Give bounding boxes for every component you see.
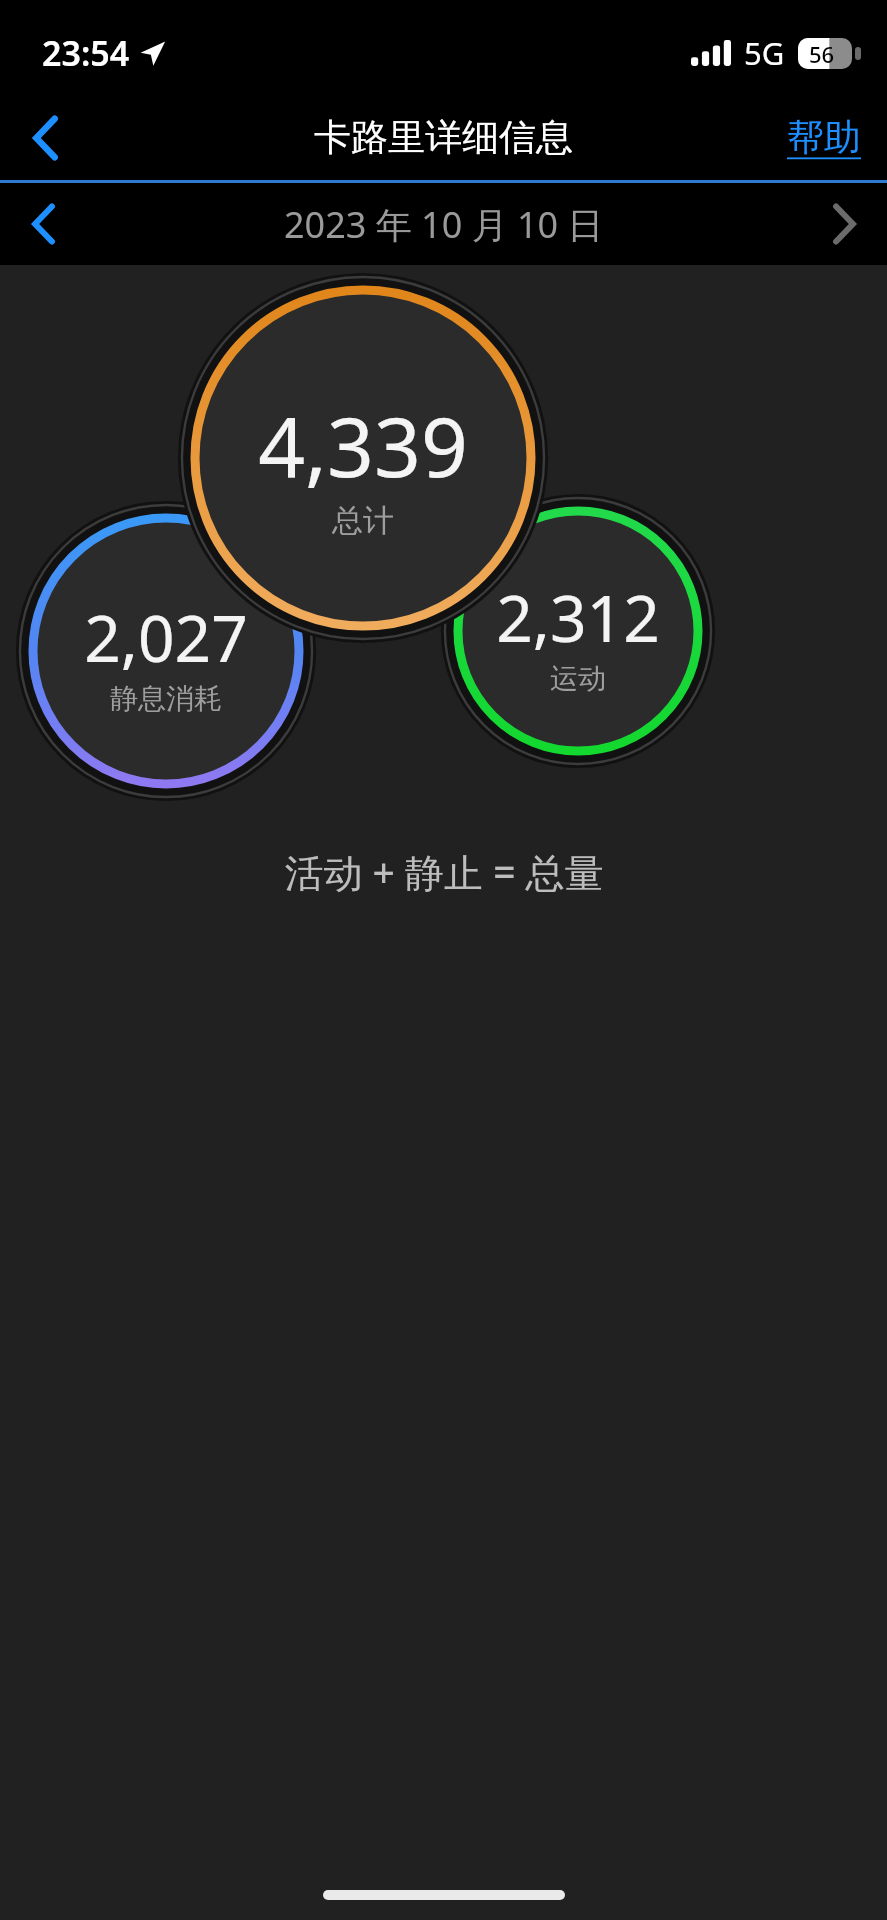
staticText: 2,312 (496, 574, 660, 661)
staticText: 活动 + 静止 = 总量 (284, 845, 604, 898)
staticText: 静息消耗 (110, 681, 222, 716)
staticText: 运动 (550, 661, 606, 696)
staticText: 总计 (332, 501, 394, 540)
staticText: 卡路里详细信息 (314, 114, 573, 161)
button[interactable]: 2,027 (36, 594, 296, 716)
button[interactable]: 上一天 (10, 191, 76, 257)
button[interactable]: 下一天 (811, 191, 877, 257)
button[interactable]: 2,312 (448, 574, 708, 696)
staticText: 4,339 (258, 389, 468, 501)
staticText: 56 (809, 39, 835, 69)
staticText: 23:54 (42, 30, 130, 76)
button[interactable]: 返回 (12, 105, 78, 171)
staticText: 5G (744, 32, 785, 74)
button[interactable]: 帮助 (787, 114, 861, 161)
staticText: 2023 年 10 月 10 日 (284, 200, 604, 249)
button[interactable]: 4,339 (213, 389, 513, 540)
staticText: 帮助 (787, 114, 861, 161)
staticText: 2,027 (84, 594, 248, 681)
